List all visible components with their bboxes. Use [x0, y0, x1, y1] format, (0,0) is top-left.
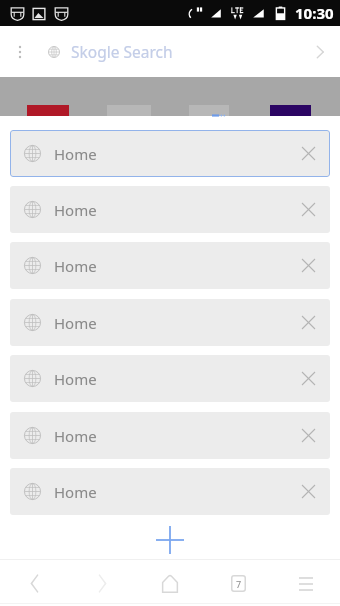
staticText: Home: [54, 369, 97, 389]
staticText: 7: [236, 578, 242, 590]
staticText: Home: [54, 313, 97, 333]
staticText: Home: [54, 482, 97, 502]
button[interactable]: Home: [10, 355, 330, 402]
button[interactable]: Forward: [300, 26, 340, 77]
button[interactable]: Home: [10, 412, 330, 459]
staticText: Home: [54, 426, 97, 446]
button[interactable]: Tabs: [204, 562, 272, 605]
staticText: Home: [54, 144, 97, 164]
button[interactable]: Close tab: [291, 190, 330, 229]
button[interactable]: Home: [10, 130, 330, 177]
button[interactable]: Close tab: [291, 246, 330, 285]
button[interactable]: Home: [10, 186, 330, 233]
button[interactable]: Menu: [272, 562, 340, 605]
staticText: 10:30: [295, 3, 334, 23]
button[interactable]: Home: [136, 562, 204, 605]
button[interactable]: Close tab: [291, 359, 330, 398]
button[interactable]: Close tab: [291, 134, 330, 173]
staticText: Skogle Search: [71, 41, 173, 62]
button[interactable]: More options: [0, 26, 40, 77]
staticText: Home: [54, 200, 97, 220]
button[interactable]: Close tab: [291, 416, 330, 455]
button[interactable]: Home: [10, 299, 330, 346]
button[interactable]: Back: [0, 562, 68, 605]
button[interactable]: Home: [10, 468, 330, 515]
button[interactable]: Close tab: [291, 303, 330, 342]
button[interactable]: Home: [10, 242, 330, 289]
button[interactable]: New tab: [148, 518, 192, 562]
staticText: Home: [54, 256, 97, 276]
button[interactable]: Close tab: [291, 472, 330, 511]
